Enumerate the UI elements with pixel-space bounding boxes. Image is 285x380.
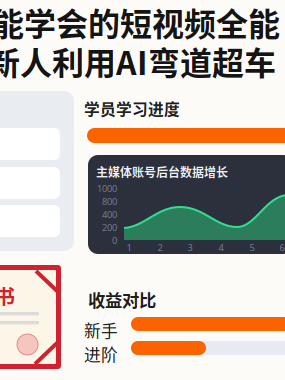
staticText: 主媒体账号后台数据增长 — [96, 163, 228, 180]
staticText: 学员学习进度 — [84, 97, 180, 120]
staticText: 200 — [102, 221, 117, 234]
staticText: 0 — [112, 234, 117, 247]
staticText: 书 — [0, 281, 15, 310]
staticText: 能学会的短视频全能 — [0, 0, 280, 45]
staticText: 1 — [126, 241, 131, 254]
staticText: 收益对比 — [88, 287, 156, 312]
staticText: 1000 — [97, 182, 117, 195]
staticText: 新手 — [84, 318, 118, 342]
staticText: 400 — [102, 208, 117, 221]
staticText: 5 — [249, 241, 254, 254]
staticText: 6 — [279, 241, 284, 254]
staticText: 新人利用AI弯道超车 — [0, 38, 276, 84]
staticText: 800 — [102, 195, 117, 208]
staticText: 2 — [157, 241, 162, 254]
staticText: 进阶 — [84, 342, 118, 366]
staticText: 4 — [218, 241, 223, 254]
staticText: 3 — [187, 241, 192, 254]
